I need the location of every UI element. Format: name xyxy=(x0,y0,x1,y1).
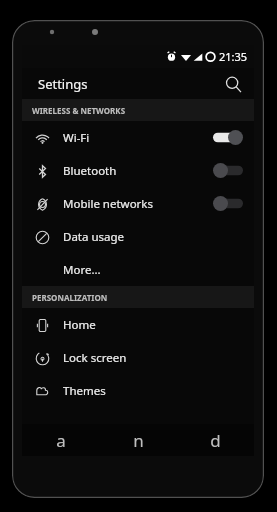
staticText: Wi-Fi xyxy=(63,130,90,146)
button[interactable]: Mobile networks xyxy=(22,187,254,220)
staticText: WIRELESS & NETWORKS xyxy=(32,105,126,116)
staticText: Themes xyxy=(63,383,106,399)
staticText: Bluetooth xyxy=(63,163,117,179)
staticText: Lock screen xyxy=(63,350,127,366)
button[interactable]: Themes xyxy=(22,374,254,407)
staticText: Settings xyxy=(38,75,88,93)
button[interactable]: Home xyxy=(100,424,177,456)
button[interactable]: Search xyxy=(220,71,246,97)
staticText: More... xyxy=(63,262,101,278)
staticText: PERSONALIZATION xyxy=(32,292,108,303)
staticText: Mobile networks xyxy=(63,196,154,212)
button[interactable]: Lock screen xyxy=(22,341,254,374)
button[interactable]: Wi-Fi xyxy=(22,121,254,154)
button[interactable]: Home xyxy=(22,308,254,341)
staticText: d xyxy=(210,429,221,452)
staticText: Data usage xyxy=(63,229,125,245)
staticText: n xyxy=(133,429,144,452)
staticText: a xyxy=(56,429,66,452)
button[interactable]: Back xyxy=(22,424,100,456)
staticText: Home xyxy=(63,317,96,333)
button[interactable]: Recents xyxy=(177,424,254,456)
button[interactable]: More... xyxy=(22,253,254,286)
button[interactable]: Bluetooth xyxy=(22,154,254,187)
staticText: 21:35 xyxy=(219,49,248,64)
button[interactable]: Data usage xyxy=(22,220,254,253)
